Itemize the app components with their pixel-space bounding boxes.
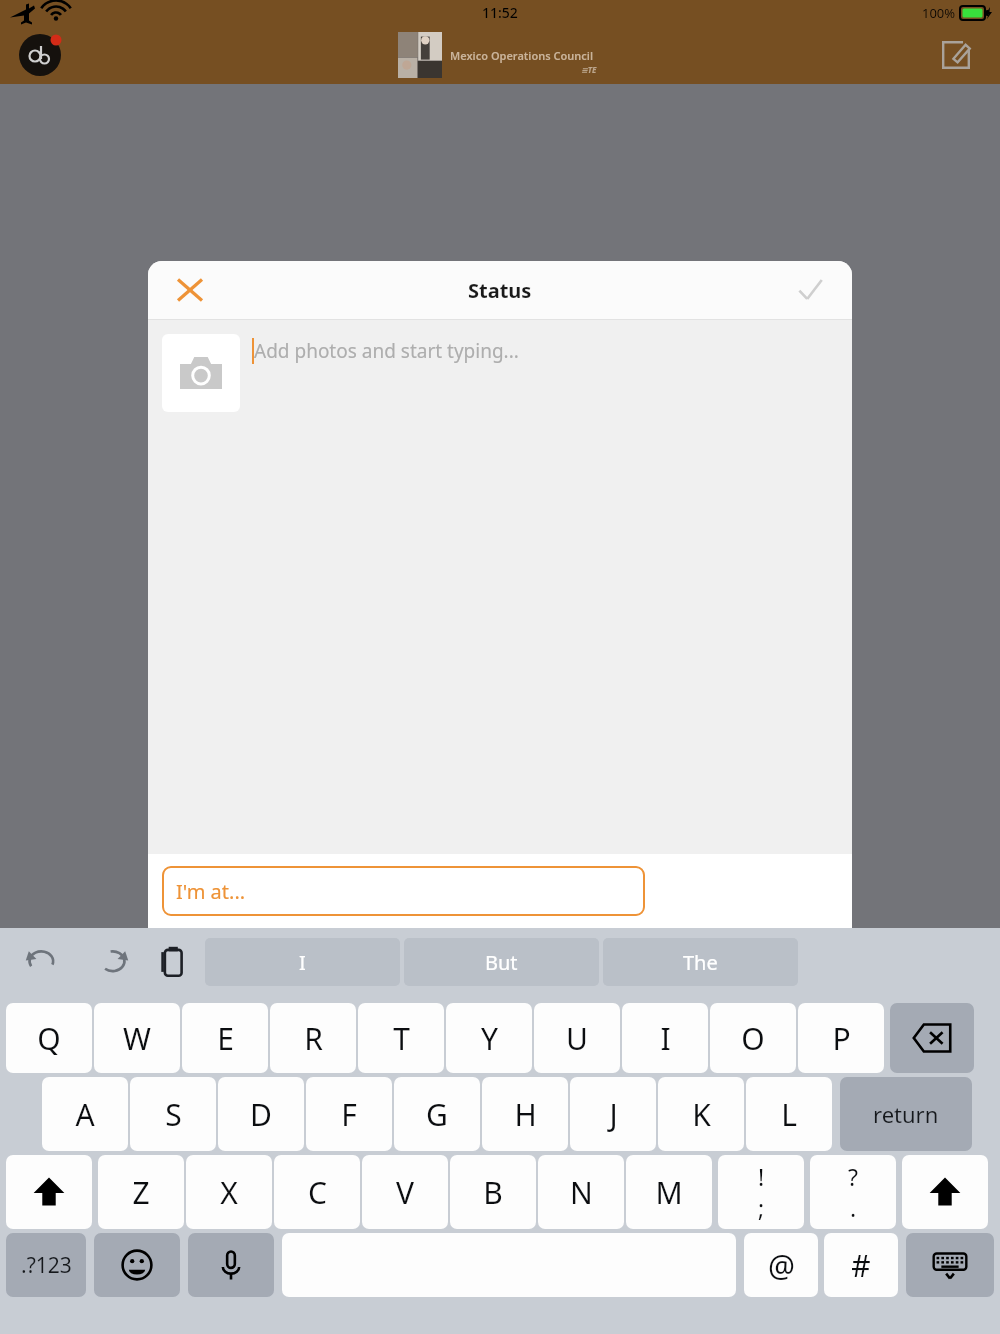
button[interactable]: Backspace (890, 1003, 974, 1073)
staticText: .?123 (21, 1251, 72, 1280)
button[interactable]: G (394, 1077, 480, 1151)
button[interactable]: X (186, 1155, 272, 1229)
button[interactable]: return (840, 1077, 972, 1151)
staticText: 11:52 (482, 3, 518, 22)
staticText: I (299, 949, 306, 976)
button[interactable]: A (42, 1077, 128, 1151)
staticText: R (304, 1018, 323, 1059)
button[interactable]: ? (810, 1155, 896, 1229)
button[interactable]: O (710, 1003, 796, 1073)
staticText: ? (848, 1161, 858, 1192)
button[interactable]: F (306, 1077, 392, 1151)
staticText: A (75, 1094, 95, 1135)
button[interactable]: The (603, 938, 798, 986)
button[interactable]: Emoji (94, 1233, 180, 1297)
staticText: . (850, 1192, 857, 1223)
button[interactable]: H (482, 1077, 568, 1151)
button[interactable]: L (746, 1077, 832, 1151)
staticText: J (609, 1094, 618, 1135)
staticText: Y (481, 1018, 498, 1059)
button[interactable]: Profile (18, 31, 66, 79)
button[interactable]: K (658, 1077, 744, 1151)
staticText: B (483, 1172, 503, 1213)
button[interactable]: Redo (88, 940, 132, 984)
staticText: Q (37, 1018, 61, 1059)
button[interactable]: @ (744, 1233, 818, 1297)
staticText: Status (468, 277, 532, 304)
staticText: I (660, 1018, 671, 1059)
staticText: Z (132, 1172, 150, 1213)
button[interactable]: Shift (6, 1155, 92, 1229)
button[interactable]: Hide keyboard (906, 1233, 994, 1297)
staticText: U (566, 1018, 588, 1059)
button[interactable]: I (622, 1003, 708, 1073)
button[interactable]: Dictation (188, 1233, 274, 1297)
staticText: V (396, 1172, 414, 1213)
staticText: K (692, 1094, 711, 1135)
staticText: I'm at... (176, 878, 246, 905)
staticText: W (123, 1018, 151, 1059)
button[interactable]: Paste (152, 940, 196, 984)
button[interactable]: Add photo (162, 334, 240, 412)
button[interactable]: .?123 (6, 1233, 86, 1297)
button[interactable]: D (218, 1077, 304, 1151)
button[interactable]: J (570, 1077, 656, 1151)
button[interactable]: R (270, 1003, 356, 1073)
staticText: F (341, 1094, 357, 1135)
button[interactable]: Close (168, 268, 212, 312)
staticText: Mexico Operations Council (450, 48, 594, 63)
button[interactable]: Compose (934, 33, 978, 77)
button[interactable]: ! (718, 1155, 804, 1229)
staticText: # (851, 1245, 871, 1286)
staticText: 100% (922, 4, 956, 22)
button[interactable]: I'm at... (162, 866, 645, 916)
button[interactable]: Undo (22, 940, 66, 984)
staticText: M (655, 1172, 683, 1213)
staticText: L (781, 1094, 797, 1135)
button[interactable]: E (182, 1003, 268, 1073)
staticText: O (741, 1018, 765, 1059)
staticText: E (217, 1018, 234, 1059)
staticText: X (220, 1172, 238, 1213)
button[interactable]: Y (446, 1003, 532, 1073)
button[interactable]: Z (98, 1155, 184, 1229)
staticText: The (683, 949, 718, 976)
button[interactable]: P (798, 1003, 884, 1073)
staticText: ! (758, 1161, 765, 1192)
staticText: S (165, 1094, 182, 1135)
button[interactable]: U (534, 1003, 620, 1073)
button[interactable]: Mexico Operations Council (398, 32, 603, 78)
button[interactable]: I (205, 938, 400, 986)
button[interactable]: # (824, 1233, 898, 1297)
staticText: return (873, 1099, 939, 1129)
staticText: But (485, 949, 518, 976)
staticText: H (514, 1094, 537, 1135)
button[interactable]: T (358, 1003, 444, 1073)
staticText: ≡TE (581, 64, 597, 75)
button[interactable]: V (362, 1155, 448, 1229)
staticText: G (426, 1094, 448, 1135)
button[interactable]: W (94, 1003, 180, 1073)
staticText: Add photos and start typing... (254, 338, 519, 364)
staticText: C (308, 1172, 327, 1213)
staticText: N (570, 1172, 593, 1213)
staticText: P (832, 1018, 851, 1059)
staticText: ; (758, 1192, 765, 1223)
button[interactable]: Q (6, 1003, 92, 1073)
button[interactable]: But (404, 938, 599, 986)
button[interactable]: S (130, 1077, 216, 1151)
button[interactable]: Post (788, 268, 832, 312)
button[interactable]: B (450, 1155, 536, 1229)
button[interactable]: N (538, 1155, 624, 1229)
staticText: D (250, 1094, 272, 1135)
button[interactable]: M (626, 1155, 712, 1229)
staticText: @ (768, 1245, 795, 1286)
button[interactable]: Shift (902, 1155, 988, 1229)
button[interactable]: C (274, 1155, 360, 1229)
staticText: T (393, 1018, 410, 1059)
